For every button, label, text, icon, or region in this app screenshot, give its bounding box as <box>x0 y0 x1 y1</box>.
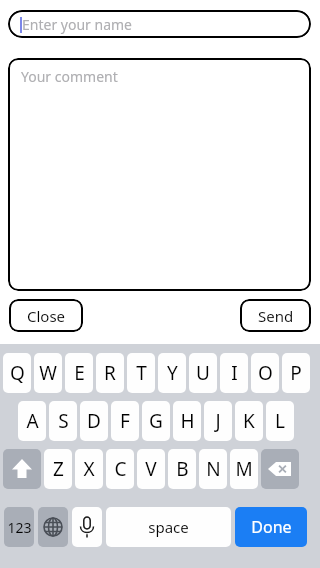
staticText: M <box>235 456 253 482</box>
button[interactable]: Delete <box>261 449 299 489</box>
button[interactable]: R <box>96 353 124 393</box>
button[interactable]: Y <box>158 353 186 393</box>
button[interactable]: Your comment <box>8 58 311 291</box>
button[interactable]: 123 <box>4 507 34 547</box>
button[interactable]: W <box>34 353 62 393</box>
button[interactable]: Z <box>44 449 72 489</box>
button[interactable]: X <box>75 449 103 489</box>
staticText: A <box>26 408 39 434</box>
staticText: U <box>196 360 210 386</box>
button[interactable]: Voice input <box>72 507 102 547</box>
staticText: I <box>231 360 238 386</box>
staticText: Send <box>258 306 294 326</box>
staticText: Z <box>53 456 64 482</box>
staticText: Q <box>10 360 25 386</box>
staticText: N <box>206 456 221 482</box>
staticText: Your comment <box>21 67 118 86</box>
button[interactable]: A <box>18 401 46 441</box>
button[interactable]: D <box>80 401 108 441</box>
staticText: Enter your name <box>22 15 132 34</box>
staticText: W <box>39 360 57 386</box>
button[interactable]: C <box>106 449 134 489</box>
button[interactable]: T <box>127 353 155 393</box>
button[interactable]: L <box>266 401 294 441</box>
staticText: space <box>148 517 189 537</box>
staticText: P <box>290 360 302 386</box>
button[interactable]: I <box>220 353 248 393</box>
staticText: G <box>149 408 163 434</box>
staticText: H <box>180 408 195 434</box>
button[interactable]: Close <box>9 299 83 332</box>
staticText: 123 <box>7 518 32 537</box>
button[interactable]: E <box>65 353 93 393</box>
staticText: C <box>114 456 127 482</box>
staticText: T <box>136 360 147 386</box>
button[interactable]: P <box>282 353 310 393</box>
button[interactable]: F <box>111 401 139 441</box>
staticText: O <box>258 360 273 386</box>
button[interactable]: Q <box>3 353 31 393</box>
button[interactable]: Shift <box>3 449 41 489</box>
staticText: F <box>120 408 130 434</box>
button[interactable]: N <box>199 449 227 489</box>
staticText: D <box>87 408 101 434</box>
staticText: Y <box>167 360 178 386</box>
button[interactable]: Enter your name <box>8 10 311 38</box>
button[interactable]: space <box>106 507 231 547</box>
staticText: Done <box>251 516 292 538</box>
button[interactable]: B <box>168 449 196 489</box>
staticText: L <box>275 408 285 434</box>
staticText: B <box>176 456 189 482</box>
button[interactable]: K <box>235 401 263 441</box>
staticText: K <box>243 408 255 434</box>
staticText: E <box>74 360 85 386</box>
staticText: V <box>145 456 157 482</box>
button[interactable]: U <box>189 353 217 393</box>
staticText: J <box>215 408 221 434</box>
staticText: S <box>58 408 69 434</box>
button[interactable]: S <box>49 401 77 441</box>
button[interactable]: O <box>251 353 279 393</box>
button[interactable]: Done <box>235 507 307 547</box>
staticText: Close <box>27 306 66 326</box>
staticText: X <box>83 456 95 482</box>
button[interactable]: V <box>137 449 165 489</box>
staticText: R <box>104 360 116 386</box>
button[interactable]: J <box>204 401 232 441</box>
button[interactable]: Change keyboard <box>38 507 68 547</box>
button[interactable]: M <box>230 449 258 489</box>
button[interactable]: G <box>142 401 170 441</box>
button[interactable]: Send <box>240 299 311 332</box>
button[interactable]: H <box>173 401 201 441</box>
